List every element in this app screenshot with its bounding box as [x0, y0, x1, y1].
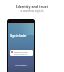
staticText: More options	[15, 64, 27, 67]
staticText: Continue as Alex	[14, 51, 28, 53]
staticText: a seamless sign-in	[20, 9, 44, 13]
staticText: Identity and trust	[16, 4, 48, 9]
button[interactable]: Continue as Alex	[10, 50, 33, 56]
staticText: Sign in faster	[10, 34, 27, 38]
staticText: alex@example.com	[14, 53, 28, 55]
